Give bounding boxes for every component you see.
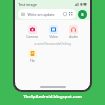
staticText: S — [81, 12, 84, 18]
staticText: Write an update — [27, 12, 55, 17]
button[interactable]: Account — [78, 10, 87, 19]
button[interactable]: Menu — [18, 9, 76, 19]
staticText: Camera — [26, 35, 38, 39]
button[interactable]: Video — [44, 24, 62, 40]
button[interactable]: Camera — [23, 24, 41, 40]
button[interactable]: File — [23, 48, 41, 64]
button[interactable]: Home — [40, 86, 66, 88]
other: Emoji — [63, 12, 67, 16]
button[interactable]: Audio — [64, 24, 82, 40]
staticText: Audio — [69, 35, 78, 39]
staticText: File — [30, 59, 35, 63]
staticText: TheSpAndroid.blogspot.com — [23, 94, 82, 100]
other: Menu — [21, 12, 25, 16]
staticText: Test image — [18, 2, 37, 7]
staticText: a.com/PasswordsOnImg — [34, 42, 71, 46]
other: Apps — [69, 12, 73, 16]
staticText: Video — [49, 35, 58, 39]
